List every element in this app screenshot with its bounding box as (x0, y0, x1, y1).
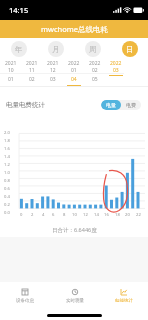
staticText: 年 (15, 45, 23, 54)
button[interactable]: 2022 (63, 60, 84, 76)
staticText: 01 (8, 76, 14, 83)
staticText: 20 (125, 212, 130, 218)
staticText: 1.4 (4, 154, 10, 160)
staticText: 03 (50, 76, 56, 83)
staticText: 1.6 (4, 146, 10, 152)
staticText: 6 (52, 212, 55, 218)
staticText: 11 (29, 67, 35, 74)
staticText: 14:15 (9, 5, 29, 15)
button[interactable]: 实时测量 (50, 282, 99, 308)
staticText: 1.0 (4, 170, 10, 176)
staticText: 2022 (68, 60, 80, 67)
button[interactable]: 年 (11, 41, 27, 57)
staticText: 02 (92, 67, 98, 74)
staticText: 10 (8, 67, 14, 74)
staticText: 2021 (5, 60, 17, 67)
staticText: 0.4 (4, 194, 10, 200)
staticText: 12 (83, 212, 88, 218)
staticText: 电量电费统计 (6, 101, 45, 109)
staticText: 18 (115, 212, 120, 218)
button[interactable]: 2021 (0, 60, 21, 76)
staticText: 10 (72, 212, 77, 218)
staticText: mwchome总线电耗 (41, 24, 108, 34)
staticText: 0.2 (4, 202, 10, 208)
staticText: 2022 (110, 60, 122, 67)
button[interactable]: 03 (42, 74, 63, 87)
staticText: 1.8 (4, 138, 10, 144)
staticText: 2022 (89, 60, 101, 67)
staticText: 0.6 (4, 186, 10, 192)
staticText: 设备信息 (16, 298, 34, 304)
staticText: 2021 (26, 60, 38, 67)
staticText: 电量 (106, 102, 116, 108)
button[interactable]: 2022 (84, 60, 105, 76)
button[interactable]: 设备信息 (0, 282, 50, 308)
staticText: 14 (94, 212, 99, 218)
button[interactable]: 02 (21, 74, 42, 87)
staticText: 日 (126, 45, 134, 54)
staticText: 电费 (126, 102, 136, 108)
button[interactable]: 电费 (121, 100, 141, 110)
button[interactable]: 01 (0, 74, 21, 87)
staticText: 8 (63, 212, 66, 218)
staticText: 2 (31, 212, 34, 218)
staticText: 04 (71, 76, 77, 83)
staticText: 01 (71, 67, 77, 74)
staticText: 电能统计 (115, 298, 133, 304)
button[interactable]: 日 (122, 41, 138, 57)
staticText: 05 (92, 76, 98, 83)
button[interactable]: 电量 (101, 100, 121, 110)
button[interactable]: 周 (85, 41, 101, 57)
staticText: 0.8 (4, 178, 10, 184)
staticText: 日合计：6.6446度 (52, 226, 97, 234)
staticText: 22 (136, 212, 141, 218)
staticText: 周 (89, 45, 97, 54)
staticText: 0.0 (4, 210, 10, 216)
staticText: 16 (104, 212, 109, 218)
staticText: 12 (50, 67, 56, 74)
staticText: 4 (42, 212, 45, 218)
staticText: 0 (20, 212, 23, 218)
button[interactable]: 2021 (42, 60, 63, 76)
staticText: 2.0 (4, 130, 10, 136)
staticText: 03 (113, 67, 119, 74)
button[interactable]: 2022 (105, 60, 126, 76)
button[interactable]: 04 (63, 74, 84, 87)
staticText: 月 (52, 45, 60, 54)
staticText: 2021 (47, 60, 59, 67)
button[interactable]: 电能统计 (99, 282, 148, 308)
button[interactable]: 月 (48, 41, 64, 57)
button[interactable]: 05 (84, 74, 105, 87)
staticText: 02 (29, 76, 35, 83)
button[interactable]: 2021 (21, 60, 42, 76)
staticText: 1.2 (4, 162, 10, 168)
staticText: 实时测量 (66, 298, 84, 304)
